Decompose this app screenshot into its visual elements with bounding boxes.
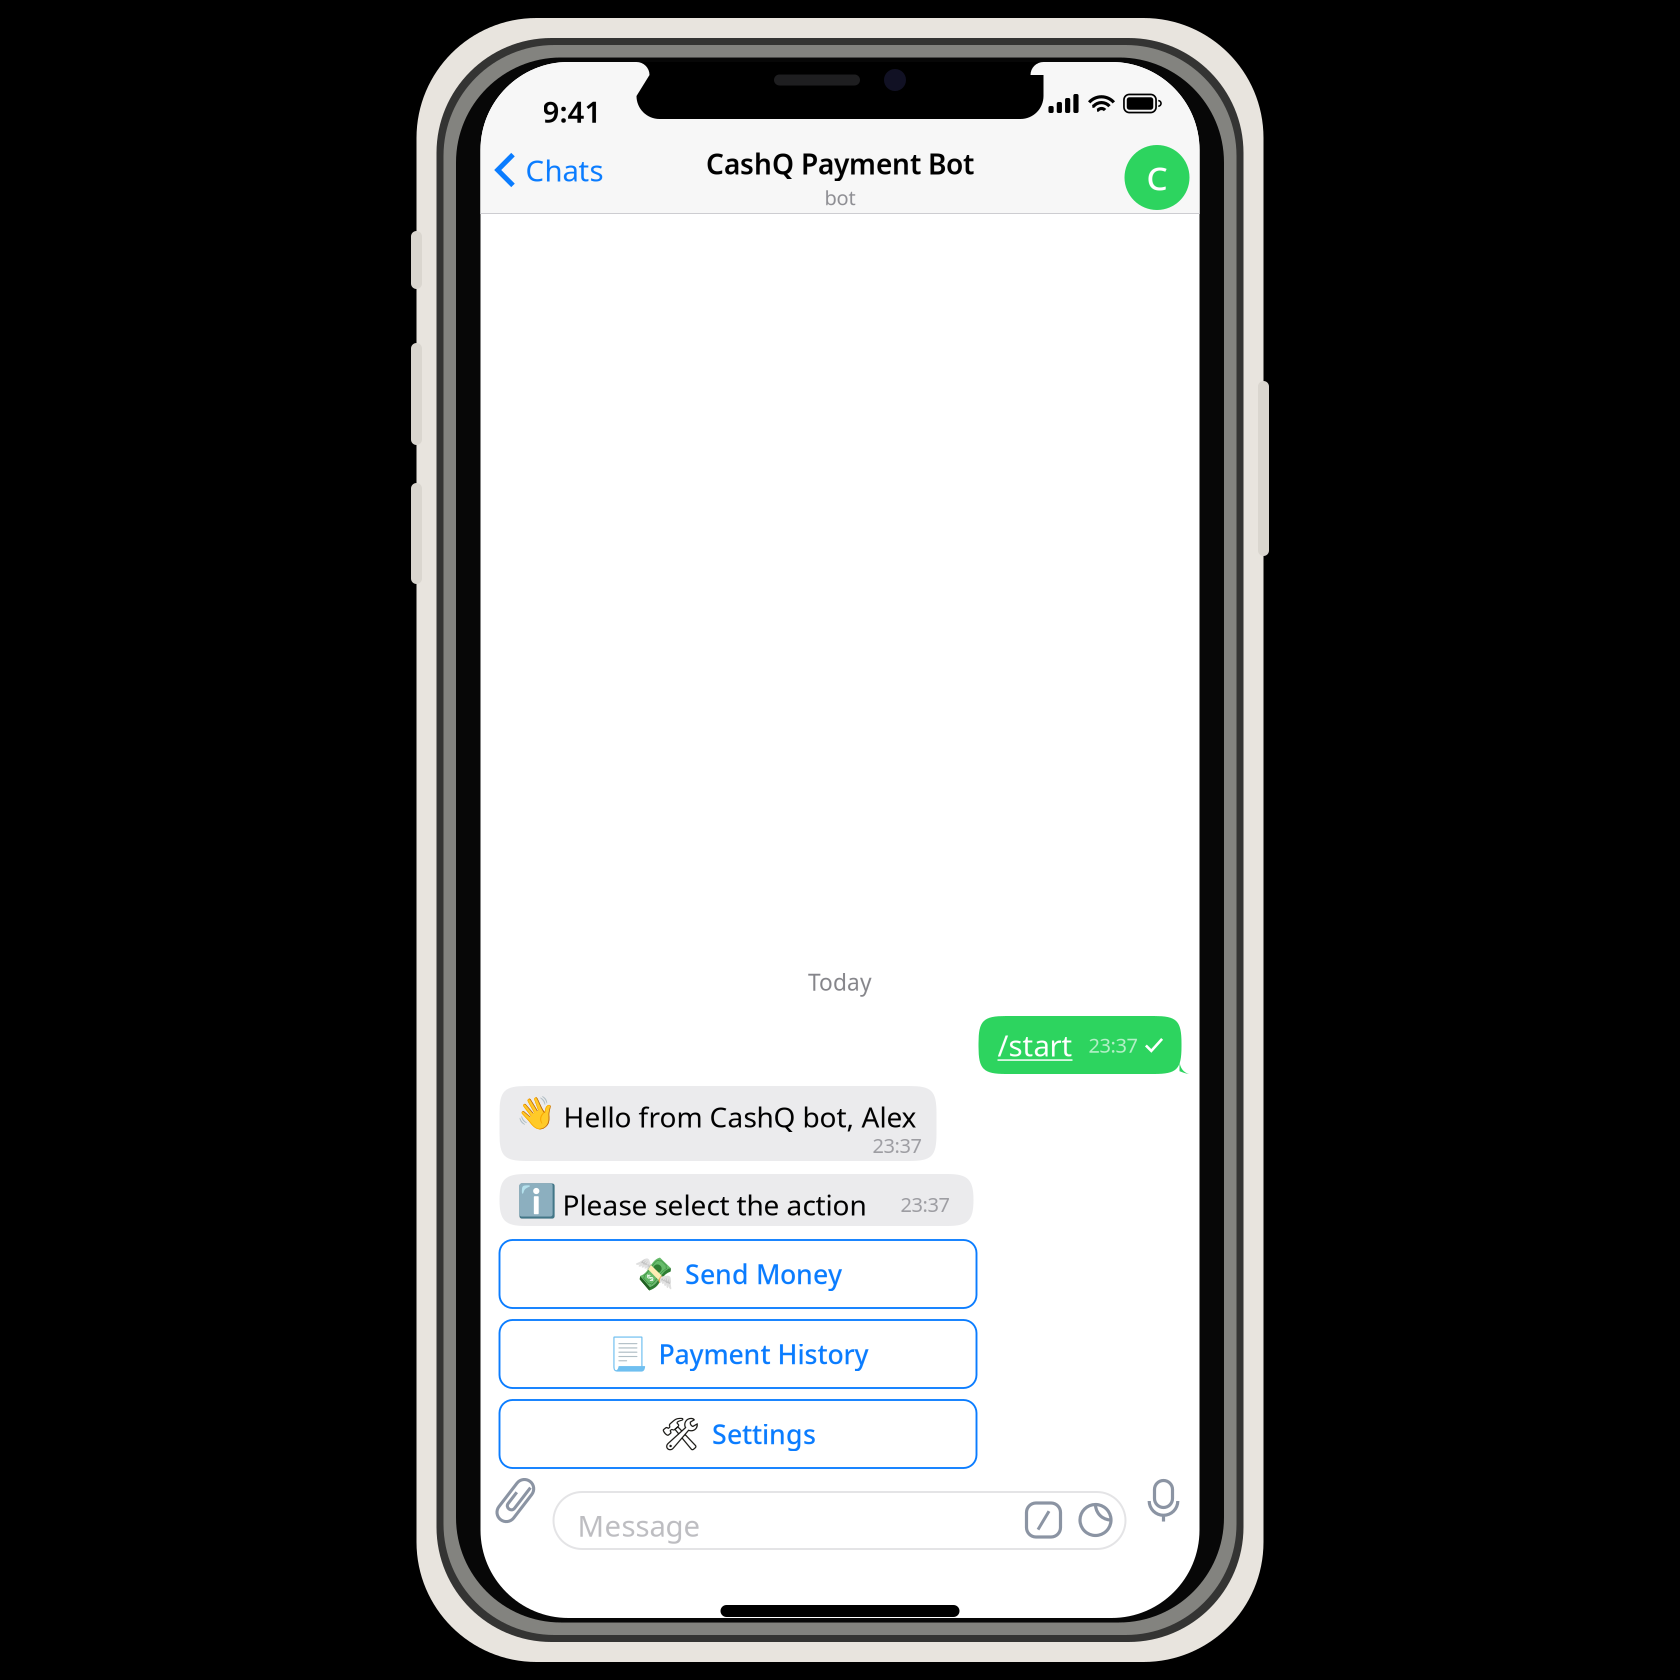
- staticText: C: [1146, 155, 1167, 200]
- staticText: Payment History: [658, 1336, 868, 1372]
- button[interactable]: 📃: [499, 1320, 976, 1388]
- button[interactable]: Bot profile: [1114, 135, 1199, 220]
- staticText: Hello from CashQ bot, Alex: [563, 1098, 916, 1135]
- staticText: 🛠: [660, 1416, 701, 1452]
- staticText: /start: [997, 1025, 1072, 1064]
- staticText: ℹ️: [516, 1183, 556, 1220]
- staticText: Today: [808, 967, 872, 997]
- staticText: CashQ Payment Bot: [706, 145, 974, 182]
- button[interactable]: Attach file: [484, 1470, 546, 1532]
- staticText: Chats: [525, 150, 603, 189]
- staticText: 👋: [515, 1095, 555, 1132]
- staticText: 💸: [634, 1256, 674, 1292]
- staticText: 23:37: [872, 1132, 921, 1159]
- staticText: 23:37: [1088, 1032, 1137, 1058]
- staticText: 9:41: [542, 92, 601, 131]
- staticText: Send Money: [685, 1256, 842, 1292]
- staticText: bot: [824, 184, 855, 211]
- button[interactable]: Chats: [480, 127, 615, 213]
- button[interactable]: Commands: [1026, 1503, 1060, 1537]
- staticText: Please select the action: [562, 1186, 866, 1223]
- staticText: 📃: [607, 1336, 647, 1372]
- staticText: Settings: [712, 1416, 816, 1452]
- button[interactable]: Record voice message: [1134, 1469, 1192, 1531]
- button[interactable]: 🛠: [499, 1400, 976, 1468]
- button[interactable]: Stickers: [1078, 1503, 1112, 1537]
- staticText: 23:37: [900, 1191, 949, 1218]
- button[interactable]: 💸: [499, 1240, 976, 1308]
- staticText: Message: [577, 1506, 700, 1545]
